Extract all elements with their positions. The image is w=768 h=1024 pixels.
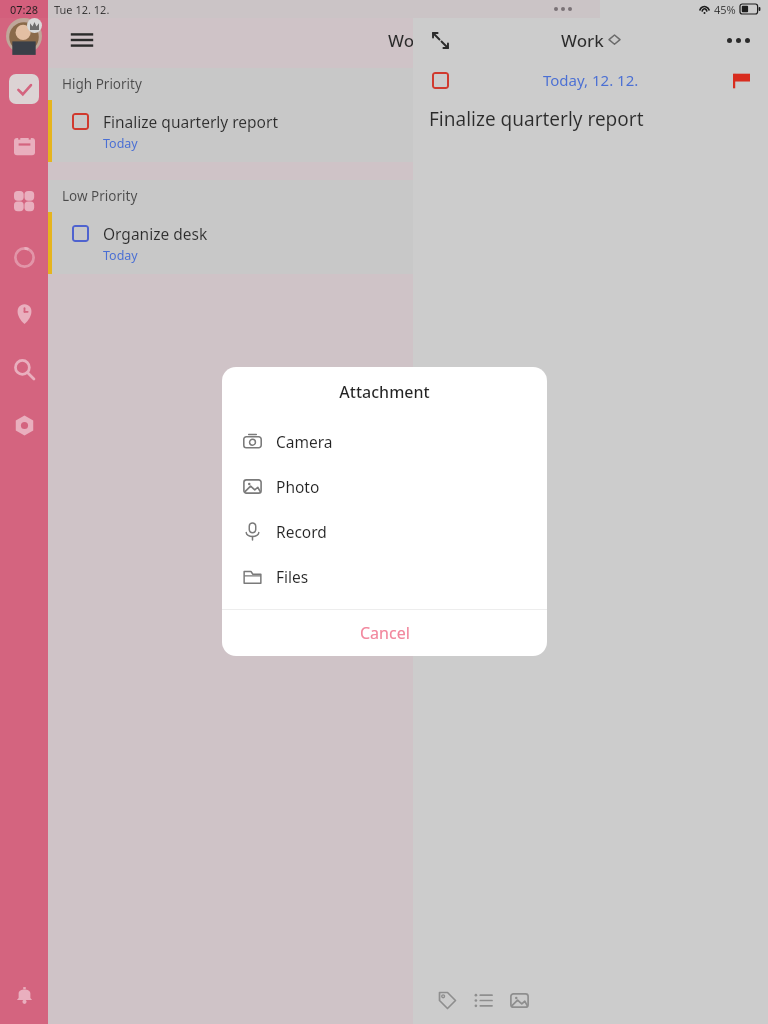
button[interactable]: Today, 12. 12. [543, 70, 639, 90]
button[interactable]: Flag [728, 67, 754, 93]
staticText: Finalize quarterly report [103, 111, 278, 132]
button[interactable]: Widgets [9, 186, 39, 216]
staticText: Today [103, 247, 138, 264]
staticText: Organize desk [103, 223, 208, 244]
staticText: Low Priority [62, 187, 138, 205]
staticText: 45% [714, 2, 736, 17]
button[interactable]: Progress [9, 242, 39, 272]
button[interactable]: Profile [6, 18, 42, 54]
button[interactable]: Photo [222, 464, 547, 509]
button[interactable]: Files [222, 554, 547, 599]
button[interactable]: Record [222, 509, 547, 554]
button[interactable]: Calendar [9, 130, 39, 160]
button[interactable]: Subtasks [465, 982, 501, 1018]
staticText: Photo [276, 476, 320, 497]
button[interactable]: Search [9, 354, 39, 384]
button[interactable]: Tags [429, 982, 465, 1018]
button[interactable]: Upcoming [9, 298, 39, 328]
staticText: Work [388, 29, 431, 52]
button[interactable]: Menu [66, 24, 98, 56]
button[interactable]: Camera [222, 419, 547, 464]
staticText: Finalize quarterly report [429, 106, 644, 132]
staticText: Camera [276, 431, 333, 452]
button[interactable]: Attach image [501, 982, 537, 1018]
staticText: Files [276, 566, 309, 587]
staticText: Work [561, 29, 604, 52]
button[interactable]: More options [722, 24, 754, 56]
button[interactable]: Work [561, 29, 620, 52]
button[interactable]: Organize desk [48, 212, 413, 274]
button[interactable]: Expand [425, 25, 455, 55]
staticText: High Priority [62, 75, 142, 93]
button[interactable]: Tasks [9, 74, 39, 104]
staticText: Cancel [360, 622, 410, 644]
button[interactable]: Cancel [222, 610, 547, 656]
staticText: 07:28 [10, 2, 39, 17]
staticText: Tue 12. 12. [54, 2, 110, 17]
staticText: Record [276, 521, 327, 542]
staticText: Today [103, 135, 138, 152]
button[interactable]: Settings [9, 410, 39, 440]
staticText: Attachment [222, 381, 547, 403]
button[interactable]: Finalize quarterly report [48, 100, 413, 162]
button[interactable]: Notifications [9, 980, 39, 1010]
button[interactable]: Complete task [427, 67, 453, 93]
